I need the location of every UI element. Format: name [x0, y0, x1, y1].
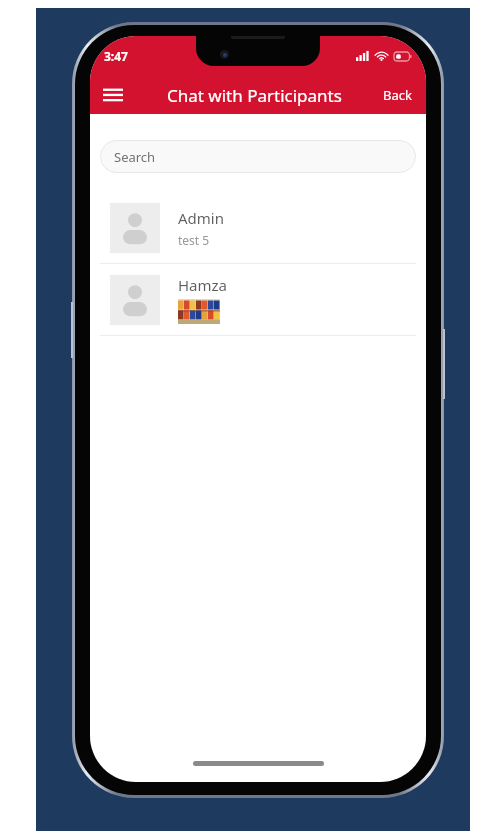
- staticText: 3:47: [104, 48, 128, 64]
- button[interactable]: Search: [100, 140, 416, 173]
- staticText: test 5: [178, 232, 210, 248]
- staticText: Hamza: [178, 275, 228, 295]
- staticText: Admin: [178, 208, 224, 228]
- staticText: Back: [383, 86, 412, 104]
- staticText: Search: [114, 148, 156, 166]
- staticText: Chat with Participants: [167, 84, 342, 107]
- button[interactable]: Back: [379, 80, 416, 110]
- button[interactable]: Admin: [90, 192, 426, 263]
- button[interactable]: Hamza: [90, 264, 426, 335]
- button[interactable]: Menu: [96, 78, 130, 112]
